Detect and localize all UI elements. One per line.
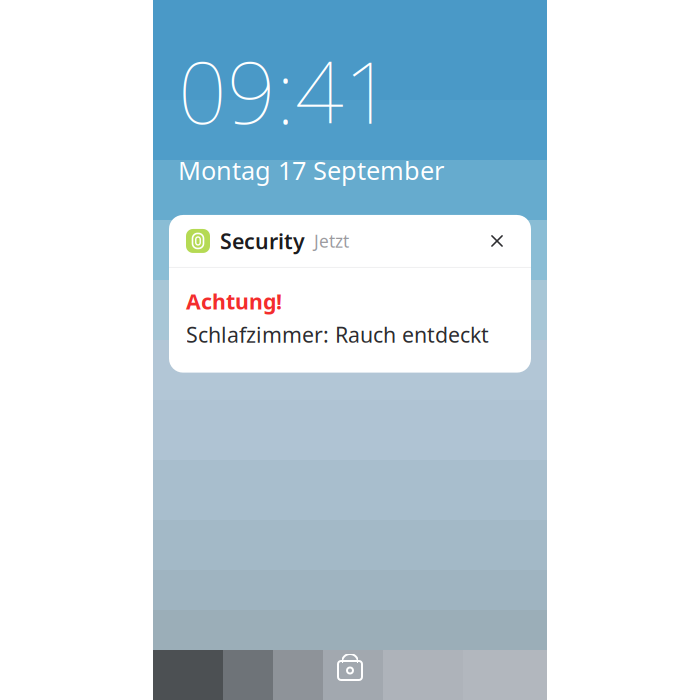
staticText: Schlafzimmer: Rauch entdeckt [186, 320, 489, 349]
staticText: Montag 17 September [178, 153, 444, 187]
staticText: Jetzt [314, 229, 349, 252]
staticText: Security [220, 227, 305, 255]
staticText: Achtung! [186, 287, 282, 315]
staticText: 09:41 [178, 34, 393, 147]
button[interactable]: Mitteilung schließen [480, 224, 514, 258]
